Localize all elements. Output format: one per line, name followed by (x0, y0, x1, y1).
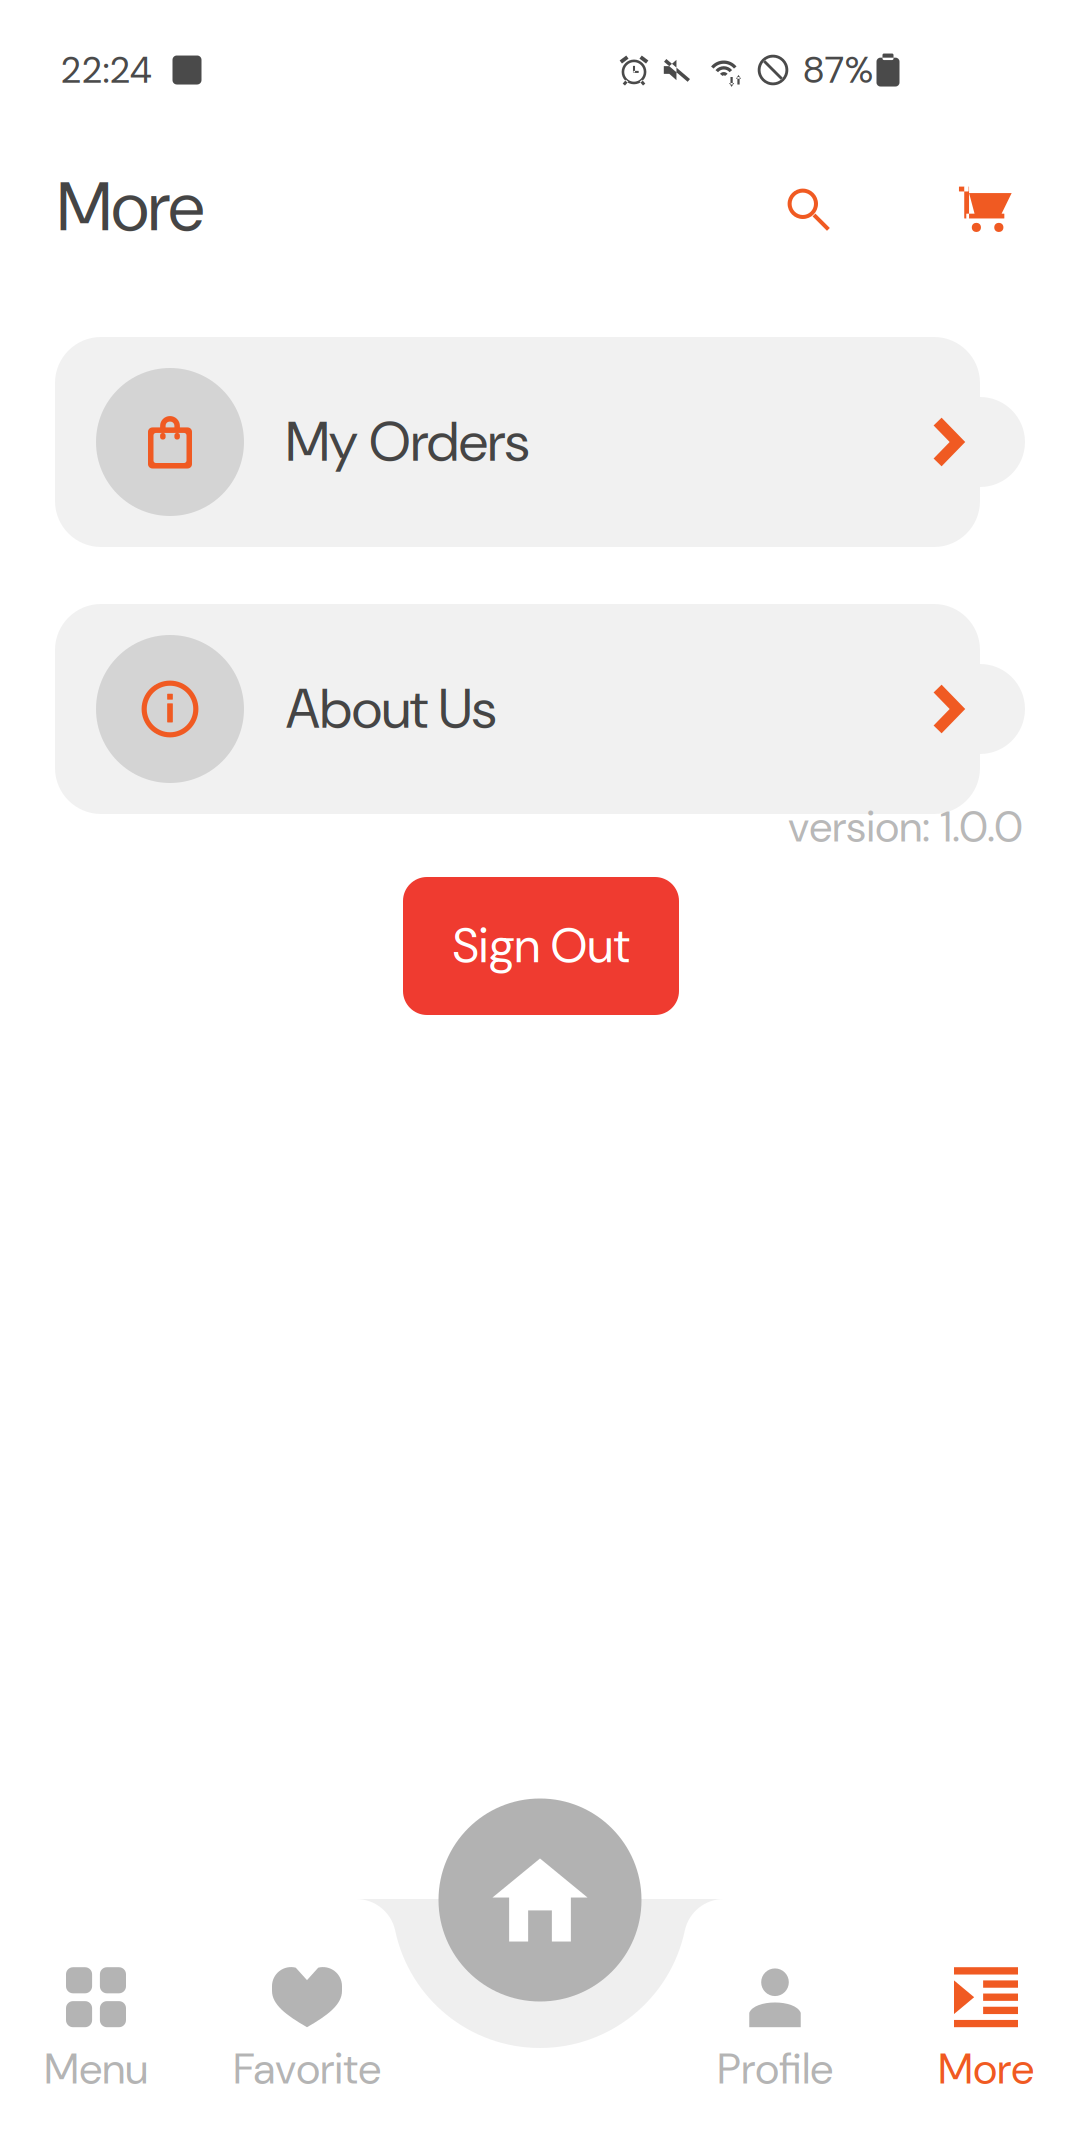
staticText: version: 1.0.0 (788, 799, 1023, 855)
button[interactable]: More (886, 1968, 1080, 2096)
staticText: 87% (802, 46, 873, 94)
button[interactable]: My Orders (55, 337, 980, 547)
button[interactable]: Menu (0, 1968, 196, 2096)
button[interactable]: Sign Out (403, 877, 679, 1015)
staticText: 22:24 (60, 46, 151, 94)
staticText: Profile (717, 2041, 833, 2097)
staticText: Favorite (233, 2041, 381, 2097)
button[interactable]: About Us (55, 604, 980, 814)
staticText: More (938, 2041, 1034, 2097)
staticText: Sign Out (452, 915, 629, 977)
staticText: Menu (44, 2041, 148, 2097)
button[interactable]: Search (752, 153, 864, 265)
staticText: About Us (286, 673, 496, 745)
staticText: My Orders (286, 406, 529, 478)
button[interactable]: Favorite (207, 1968, 407, 2096)
button[interactable]: Shopping cart (930, 154, 1042, 266)
staticText: More (57, 163, 204, 251)
button[interactable]: Profile (675, 1968, 875, 2096)
button[interactable]: Home (438, 1798, 641, 2001)
